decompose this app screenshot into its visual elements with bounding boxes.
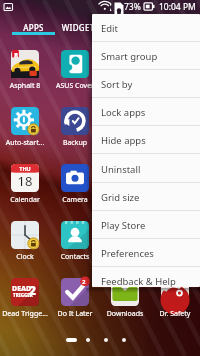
staticText: 8 — [14, 51, 19, 61]
button[interactable]: Play Store — [92, 211, 200, 239]
button[interactable]: DEAD — [100, 210, 150, 267]
staticText: 73% — [124, 1, 141, 13]
button[interactable]: Downloads — [100, 267, 150, 324]
button[interactable]: Backup — [50, 96, 100, 153]
staticText: Dr. Safety — [151, 309, 199, 319]
staticText: Dead Trigg... — [101, 252, 149, 262]
staticText: Calendar — [1, 195, 49, 205]
staticText: Backup — [51, 138, 99, 148]
staticText: Contacts — [51, 252, 99, 262]
button[interactable]: 2 — [150, 210, 200, 267]
button[interactable]: Edit — [92, 14, 200, 42]
button[interactable]: Calculator — [150, 96, 200, 153]
button[interactable]: Lock apps — [92, 98, 200, 126]
button[interactable]: Auto-start... — [150, 39, 200, 96]
staticText: Grid size — [101, 191, 140, 204]
staticText: Sort by — [101, 78, 133, 91]
staticText: WIDGETS — [57, 22, 104, 33]
button[interactable]: Auto-start... — [0, 96, 50, 153]
staticText: 18 — [11, 172, 39, 190]
button[interactable]: Browser — [100, 96, 150, 153]
staticText: TRIGGER — [13, 292, 41, 298]
staticText: Feedback & Help — [101, 275, 176, 287]
staticText: Camera — [51, 195, 99, 205]
button[interactable]: Uninstall — [92, 155, 200, 183]
staticText: Dead Trigge... — [1, 309, 49, 319]
button[interactable]: WIDGETS — [57, 14, 104, 38]
button[interactable]: Contacts — [50, 210, 100, 267]
button[interactable]: Smart group — [92, 42, 200, 70]
button[interactable]: THU — [0, 153, 50, 210]
staticText: Preferences — [101, 247, 154, 260]
button[interactable]: Clean Mast... — [100, 153, 150, 210]
staticText: DEAD — [112, 227, 140, 237]
staticText: AudioWizar... — [101, 81, 149, 91]
staticText: APPS — [10, 22, 57, 33]
button[interactable]: Clock — [150, 153, 200, 210]
staticText: 2 — [129, 225, 137, 241]
button[interactable]: DEAD — [0, 267, 50, 324]
button[interactable]: Dr. Safety — [150, 267, 200, 324]
staticText: Lock apps — [101, 106, 146, 119]
button[interactable]: Sort by — [92, 70, 200, 98]
button[interactable]: Clock — [0, 210, 50, 267]
staticText: Uninstall — [101, 163, 141, 176]
button[interactable]: 8 — [0, 39, 50, 96]
staticText: Do It Later — [51, 309, 99, 319]
staticText: CATEGORIES — [104, 22, 162, 33]
button[interactable]: APPS — [10, 14, 57, 38]
staticText: Do It Later — [151, 252, 199, 262]
button[interactable]: Preferences — [92, 239, 200, 267]
button[interactable]: AudioWizar... — [100, 39, 150, 96]
staticText: Browser — [101, 138, 149, 148]
staticText: 2 — [82, 278, 86, 286]
button[interactable]: CATEGORIES — [104, 14, 162, 38]
staticText: Auto-start... — [1, 138, 49, 148]
button[interactable]: ASUS Cover — [50, 39, 100, 96]
staticText: 10:04 PM — [159, 1, 196, 13]
button[interactable]: Grid size — [92, 183, 200, 211]
staticText: TRIGGER — [113, 235, 141, 241]
staticText: Clock — [1, 252, 49, 262]
button[interactable]: Camera — [50, 153, 100, 210]
staticText: Asphalt 8 — [1, 81, 49, 91]
button[interactable]: Hide apps — [92, 126, 200, 154]
staticText: Smart group — [101, 50, 158, 63]
staticText: ASUS Cover — [51, 81, 99, 91]
staticText: Clean Mast... — [101, 195, 149, 205]
staticText: Hide apps — [101, 134, 146, 147]
staticText: Edit — [101, 22, 119, 35]
button[interactable]: Feedback & Help — [92, 267, 200, 287]
staticText: THU — [11, 165, 39, 172]
staticText: Downloads — [101, 309, 149, 319]
staticText: Play Store — [101, 219, 146, 232]
button[interactable]: 2 — [50, 267, 100, 324]
staticText: 2 — [29, 282, 37, 298]
staticText: DEAD — [12, 284, 40, 294]
